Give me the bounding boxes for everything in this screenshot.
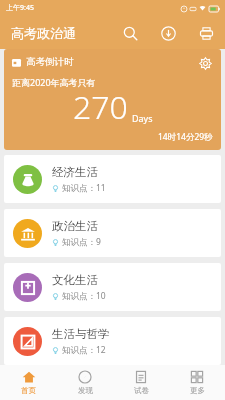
button[interactable]: 高考倒计时 [4, 49, 221, 150]
button[interactable]: 首页 [0, 367, 57, 398]
button[interactable]: 经济生活 [4, 155, 221, 203]
staticText: 距离2020年高考只有 [12, 76, 96, 88]
button[interactable]: Settings [195, 53, 215, 73]
button[interactable]: Download [157, 22, 179, 44]
staticText: 知识点：10 [62, 290, 106, 302]
button[interactable]: 政治生活 [4, 209, 221, 257]
staticText: 政治生活 [52, 219, 98, 233]
button[interactable]: 文化生活 [4, 263, 221, 311]
button[interactable]: Search [119, 22, 141, 44]
staticText: 首页 [21, 386, 36, 395]
staticText: 试卷 [134, 386, 149, 395]
staticText: 知识点：9 [62, 236, 101, 248]
button[interactable]: 试卷 [113, 367, 169, 398]
button[interactable]: Print [195, 22, 217, 44]
staticText: 文化生活 [52, 273, 98, 287]
staticText: 更多 [190, 386, 205, 395]
staticText: 14时14分29秒 [158, 131, 213, 143]
staticText: 上午9:45 [6, 3, 34, 13]
button[interactable]: 生活与哲学 [4, 317, 221, 365]
staticText: Days [132, 112, 153, 124]
staticText: 知识点：11 [62, 182, 106, 194]
staticText: 生活与哲学 [52, 327, 110, 341]
staticText: 经济生活 [52, 165, 98, 179]
staticText: 高考倒计时 [26, 56, 74, 68]
staticText: 发现 [78, 386, 93, 395]
button[interactable]: 更多 [169, 367, 225, 398]
staticText: 高考政治通 [11, 25, 76, 41]
staticText: 270 [73, 85, 128, 129]
button[interactable]: 发现 [57, 367, 113, 398]
staticText: 知识点：12 [62, 344, 106, 356]
